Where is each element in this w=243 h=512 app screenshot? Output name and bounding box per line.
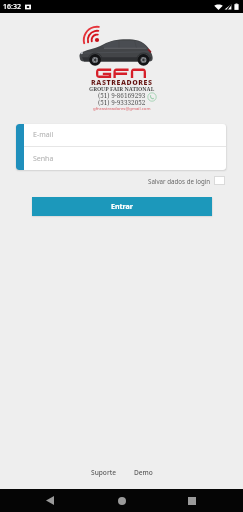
button[interactable]: Demo bbox=[130, 466, 157, 479]
staticText: Senha bbox=[33, 154, 54, 164]
button[interactable]: Recents bbox=[180, 489, 204, 512]
staticText: RASTREADORES bbox=[91, 78, 153, 88]
staticText: E-mail bbox=[33, 130, 54, 140]
staticText: (51) 9-93332052 bbox=[98, 98, 146, 107]
button[interactable]: E-mail bbox=[24, 124, 226, 146]
button[interactable]: Salvar dados de login bbox=[148, 176, 225, 185]
staticText: Entrar bbox=[111, 202, 133, 212]
button[interactable]: Entrar bbox=[32, 197, 212, 216]
staticText: 16:32 bbox=[3, 2, 21, 12]
button[interactable]: Home bbox=[110, 489, 134, 512]
staticText: gfnrastreadores@gmail.com bbox=[93, 105, 151, 111]
staticText: (51) 9-86169293 bbox=[98, 91, 146, 100]
staticText: Salvar dados de login bbox=[148, 177, 211, 185]
staticText: GROUP FAIR NATIONAL bbox=[89, 85, 155, 92]
button[interactable]: Back bbox=[38, 489, 62, 512]
button[interactable]: Senha bbox=[24, 147, 226, 170]
button[interactable]: Suporte bbox=[87, 466, 120, 479]
